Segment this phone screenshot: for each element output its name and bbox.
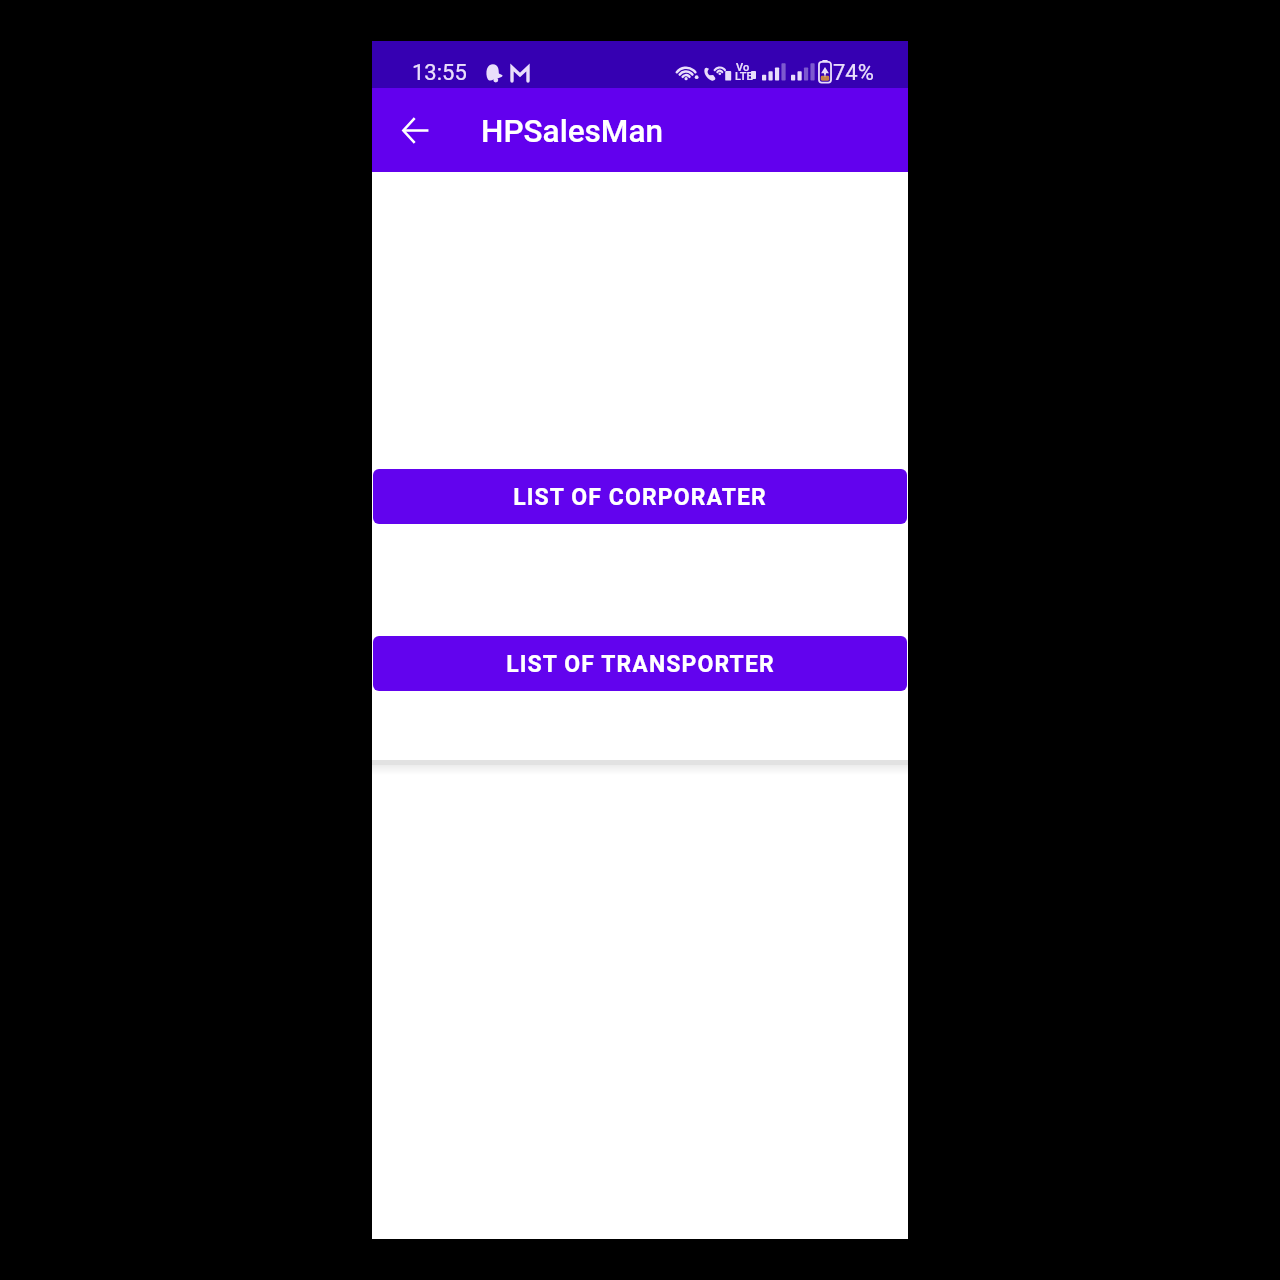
staticText: LIST OF TRANSPORTER xyxy=(506,651,775,678)
staticText: 74% xyxy=(833,60,874,86)
button[interactable]: LIST OF CORPORATER xyxy=(373,469,907,524)
staticText: 13:55 xyxy=(412,60,467,86)
staticText: Vo xyxy=(736,61,750,74)
button[interactable]: LIST OF TRANSPORTER xyxy=(373,636,907,691)
staticText: LIST OF CORPORATER xyxy=(513,484,767,511)
staticText: LTE xyxy=(735,70,753,83)
button[interactable]: Navigate back xyxy=(379,94,451,166)
staticText: HPSalesMan xyxy=(481,113,664,150)
